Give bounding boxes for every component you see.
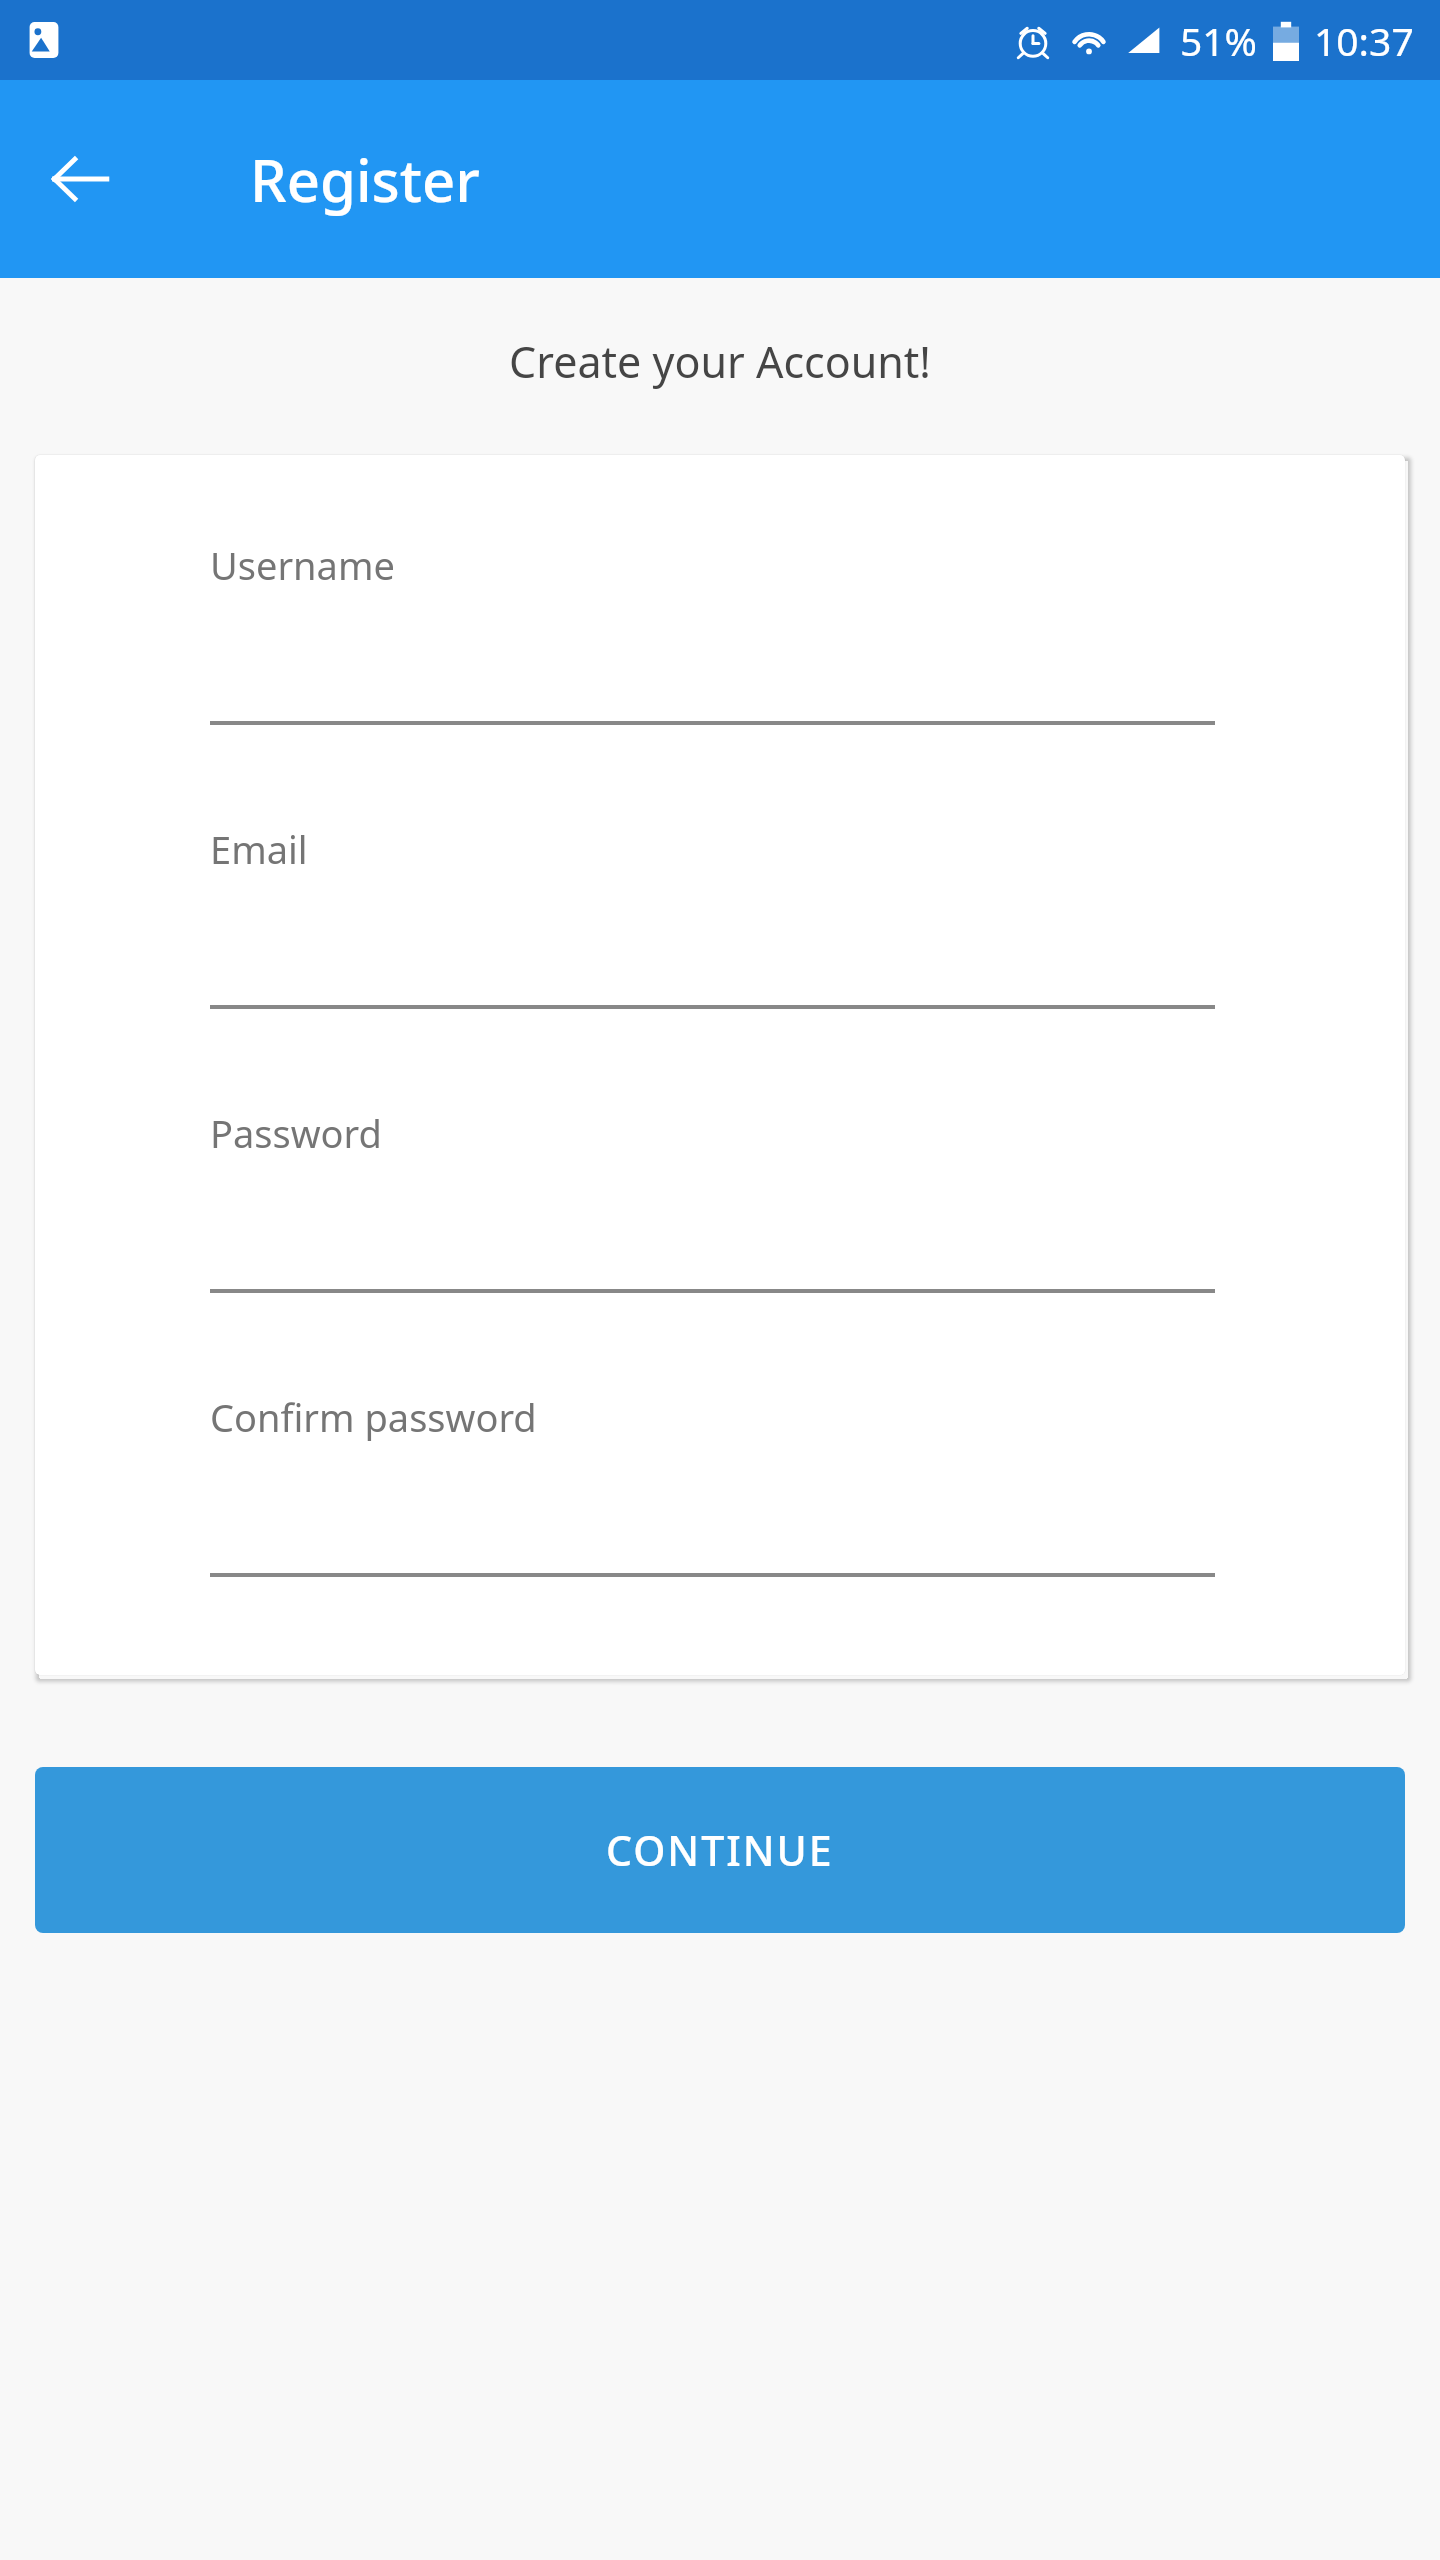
staticText: Email: [210, 823, 308, 875]
button[interactable]: CONTINUE: [35, 1767, 1405, 1933]
staticText: Password: [210, 1107, 382, 1159]
staticText: Register: [250, 140, 480, 219]
button[interactable]: Email: [210, 823, 1215, 1107]
button[interactable]: Password: [210, 1107, 1215, 1391]
staticText: Username: [210, 539, 395, 591]
button[interactable]: Confirm password: [210, 1391, 1215, 1577]
staticText: 51%: [1180, 14, 1258, 67]
staticText: CONTINUE: [606, 1822, 834, 1878]
staticText: Create your Account!: [0, 332, 1440, 391]
button[interactable]: Username: [210, 539, 1215, 823]
staticText: Confirm password: [210, 1391, 537, 1443]
staticText: 10:37: [1314, 14, 1414, 67]
button[interactable]: Back: [26, 125, 134, 233]
